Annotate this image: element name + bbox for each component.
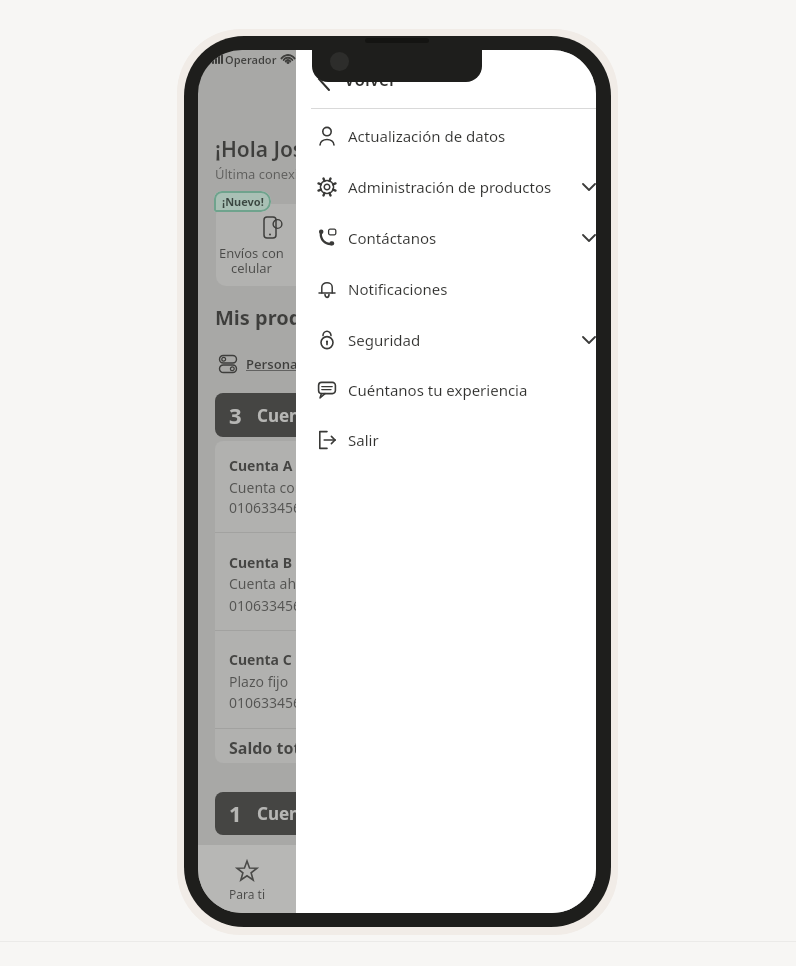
staticText: Cuenta A [229, 456, 293, 475]
staticText: Cuenta C [229, 650, 292, 669]
staticText: 010633456789012 [229, 596, 350, 615]
staticText: Envíos con [219, 244, 284, 262]
staticText: ¡Hola Jose! [215, 135, 322, 164]
staticText: Administración de productos [348, 177, 552, 197]
button[interactable]: Cuéntanos tu experiencia [308, 370, 596, 410]
staticText: Cuenta corriente [229, 478, 340, 497]
staticText: Última conexión: 20 ene 2025 [215, 165, 396, 183]
staticText: Contáctanos [348, 228, 437, 248]
button[interactable]: Seguridad [308, 320, 596, 360]
staticText: Plazo fijo [229, 672, 289, 691]
button[interactable]: Administración de productos [308, 167, 596, 207]
button[interactable]: Actualización de datos [308, 116, 596, 156]
staticText: ¡Nuevo! [222, 194, 264, 209]
staticText: Para ti [229, 886, 265, 902]
button[interactable]: Volver [308, 59, 488, 99]
staticText: Notificaciones [348, 279, 448, 299]
button[interactable]: Contáctanos [308, 218, 596, 258]
button[interactable] [216, 204, 366, 286]
button[interactable]: Para ti [207, 849, 287, 911]
staticText: Cuentas [257, 404, 327, 427]
staticText: Salir [348, 430, 379, 450]
staticText: Mis productos [215, 304, 356, 331]
staticText: 3 [229, 400, 242, 430]
staticText: Actualización de datos [348, 126, 506, 146]
button[interactable]: Salir [308, 420, 596, 460]
button[interactable]: Personalizar productos [219, 353, 393, 375]
staticText: Volver [344, 68, 397, 91]
staticText: celular [231, 259, 272, 277]
button[interactable]: Notificaciones [308, 269, 596, 309]
staticText: Cuenta ahorros [229, 574, 332, 593]
staticText: Cuenta B [229, 553, 292, 572]
staticText: 010633456789012 [229, 498, 350, 517]
staticText: Cuéntanos tu experiencia [348, 380, 528, 400]
staticText: Operador [225, 52, 277, 67]
staticText: Saldo total [229, 737, 315, 759]
staticText: Seguridad [348, 330, 421, 350]
staticText: 010633456789012 [229, 693, 350, 712]
staticText: 1 [229, 798, 242, 828]
staticText: Cuenta [257, 802, 318, 825]
staticText: Personalizar productos [246, 355, 393, 373]
